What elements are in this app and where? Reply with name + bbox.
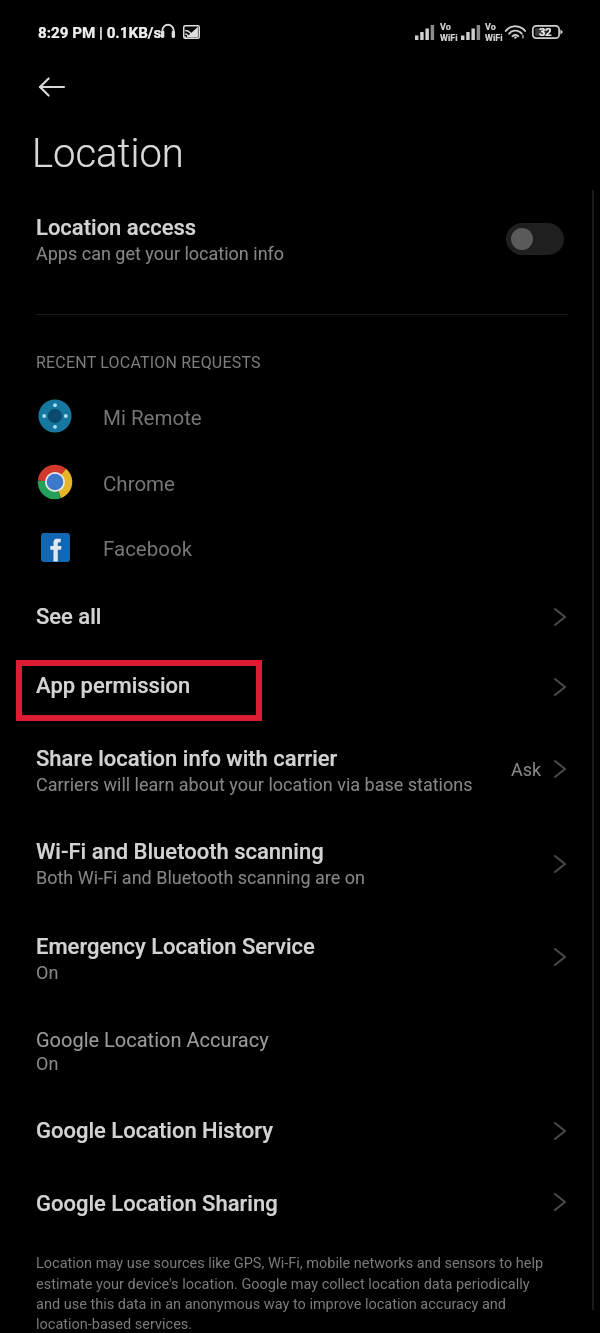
staticText: Carriers will learn about your location … <box>36 774 473 795</box>
button[interactable]: See all <box>0 580 600 648</box>
button[interactable]: Location access <box>0 196 600 282</box>
staticText: Location access <box>36 215 197 241</box>
staticText: Location may use sources like GPS, Wi-Fi… <box>36 1255 548 1332</box>
staticText: WiFi <box>440 33 458 44</box>
button[interactable]: App permission <box>0 648 600 719</box>
staticText: Apps can get your location info <box>36 243 285 264</box>
button[interactable]: Google Location Accuracy <box>0 1000 600 1092</box>
button[interactable]: Google Location History <box>0 1092 600 1163</box>
staticText: Location <box>32 130 184 177</box>
staticText: App permission <box>36 673 191 699</box>
staticText: Ask <box>511 759 542 780</box>
button[interactable]: Facebook <box>0 521 600 573</box>
staticText: Both Wi-Fi and Bluetooth scanning are on <box>36 867 365 888</box>
button[interactable]: Google Location Sharing <box>0 1163 600 1234</box>
button[interactable]: Share location info with carrier <box>0 719 600 813</box>
staticText: WiFi <box>485 33 503 44</box>
staticText: Emergency Location Service <box>36 934 315 960</box>
staticText: Google Location Sharing <box>36 1191 278 1217</box>
staticText: Wi-Fi and Bluetooth scanning <box>36 839 324 865</box>
button[interactable]: Emergency Location Service <box>0 908 600 1000</box>
staticText: Chrome <box>103 472 175 496</box>
staticText: Facebook <box>103 537 193 561</box>
button[interactable]: Back <box>25 63 73 111</box>
button[interactable]: Mi Remote <box>0 390 600 442</box>
staticText: See all <box>36 604 102 630</box>
staticText: Share location info with carrier <box>36 746 338 772</box>
button[interactable]: Wi-Fi and Bluetooth scanning <box>0 813 600 908</box>
staticText: Vo <box>440 22 451 33</box>
button[interactable]: Chrome <box>0 456 600 508</box>
staticText: On <box>36 962 59 983</box>
staticText: On <box>36 1053 59 1074</box>
staticText: RECENT LOCATION REQUESTS <box>36 353 261 372</box>
staticText: Google Location History <box>36 1118 273 1144</box>
staticText: 32 <box>539 26 552 39</box>
staticText: Vo <box>485 22 496 33</box>
staticText: Mi Remote <box>103 406 202 430</box>
staticText: Google Location Accuracy <box>36 1028 269 1051</box>
staticText: 8:29 PM | 0.1KB/s <box>38 24 162 42</box>
